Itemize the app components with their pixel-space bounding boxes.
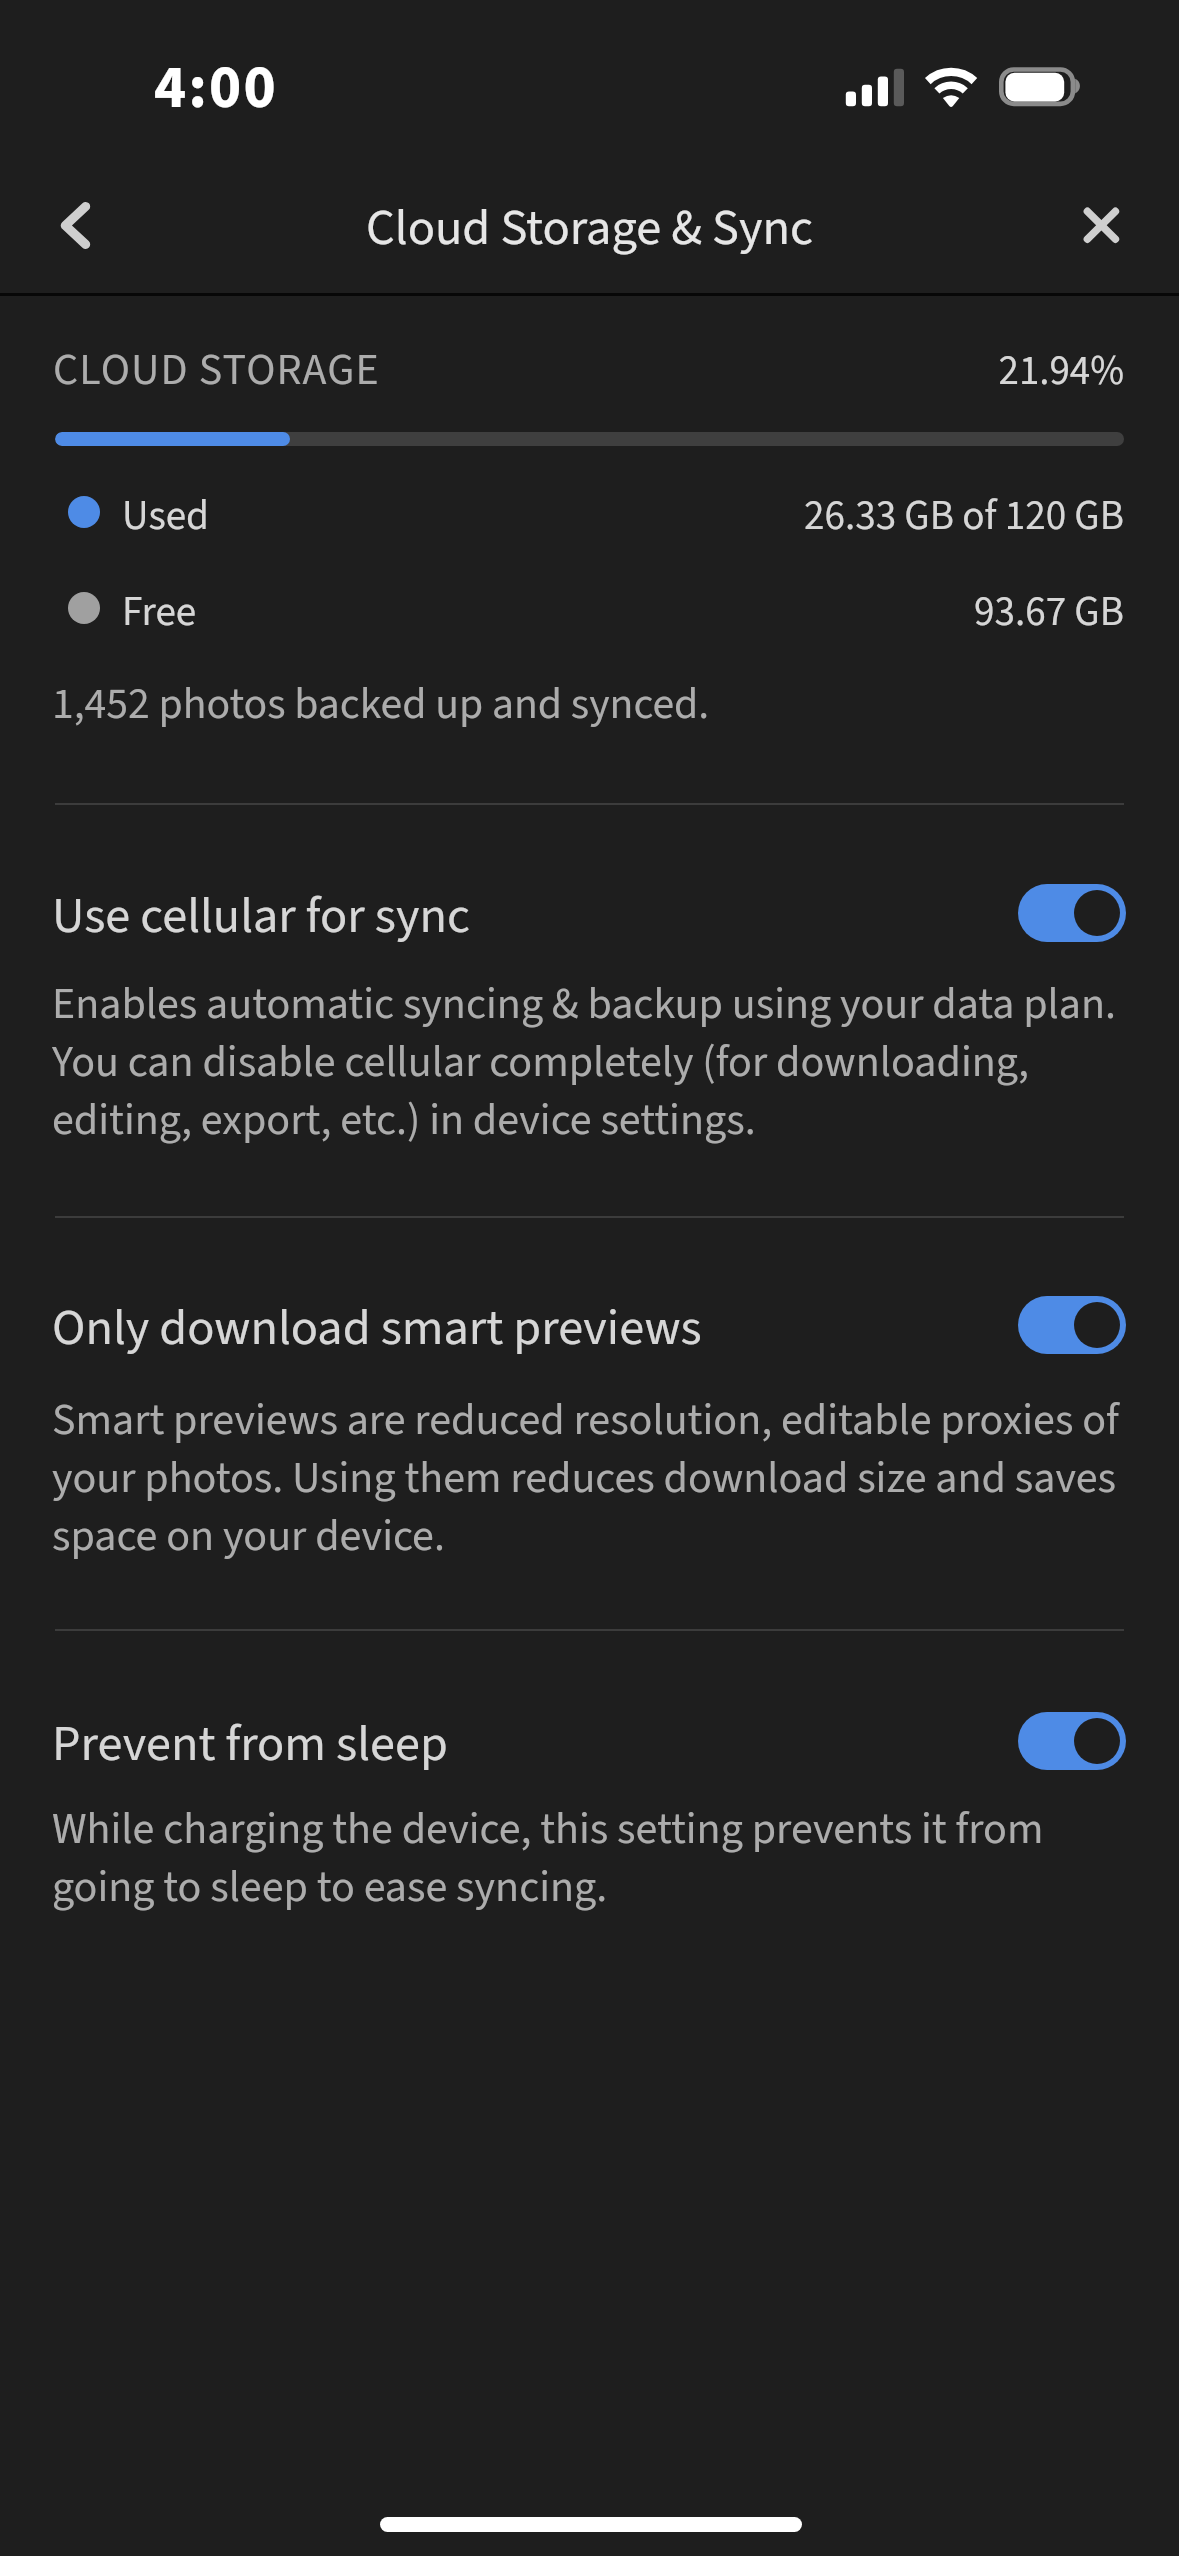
staticText: While charging the device, this setting … [52,1798,1044,1861]
button[interactable]: Toggle setting [1018,1712,1126,1770]
staticText: 21.94% [0,342,1124,400]
staticText: editing, export, etc.) in device setting… [52,1089,756,1152]
staticText: going to sleep to ease syncing. [52,1856,608,1919]
staticText: 26.33 GB of 120 GB [0,487,1124,546]
button[interactable]: Back [22,183,128,269]
staticText: Smart previews are reduced resolution, e… [52,1389,1119,1452]
staticText: Free [122,583,197,642]
staticText: Only download smart previews [52,1292,702,1364]
staticText: 93.67 GB [0,583,1124,642]
staticText: Enables automatic syncing & backup using… [52,973,1116,1036]
button[interactable]: Toggle setting [1018,884,1126,942]
button[interactable]: Use cellular for sync [0,876,1179,964]
staticText: space on your device. [52,1505,445,1568]
staticText: Used [122,487,209,546]
staticText: 4:00 [154,45,279,132]
button[interactable]: Toggle setting [1018,1296,1126,1354]
staticText: 1,452 photos backed up and synced. [52,673,710,735]
staticText: You can disable cellular completely (for… [52,1031,1029,1094]
staticText: your photos. Using them reduces download… [52,1447,1117,1510]
button[interactable]: Only download smart previews [0,1288,1179,1376]
staticText: Prevent from sleep [52,1708,448,1780]
button[interactable]: Close [1056,183,1154,269]
staticText: Use cellular for sync [52,880,470,952]
staticText: CLOUD STORAGE [53,339,380,402]
button[interactable]: Prevent from sleep [0,1704,1179,1792]
staticText: Cloud Storage & Sync [0,192,1179,264]
